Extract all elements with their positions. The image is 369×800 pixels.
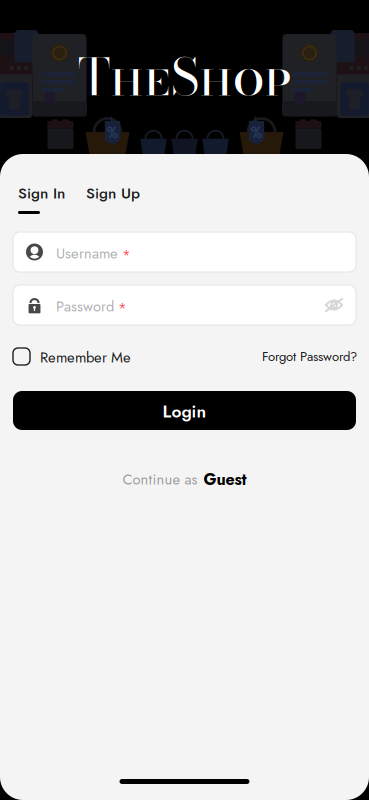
button[interactable]: Sign In [18, 182, 67, 214]
button[interactable]: Remember Me [13, 348, 131, 365]
staticText: Continue as [122, 469, 197, 490]
button[interactable]: Continue as [122, 471, 246, 488]
button[interactable]: Sign Up [86, 182, 142, 214]
button[interactable]: Forgot Password? [262, 349, 357, 364]
staticText: * [118, 297, 127, 319]
staticText: Sign In [18, 182, 65, 204]
button[interactable]: Username [13, 232, 356, 272]
staticText: Login [162, 399, 206, 424]
staticText: Password [56, 296, 114, 317]
staticText: Forgot Password? [262, 347, 357, 366]
button[interactable]: Login [13, 391, 356, 430]
staticText: Guest [203, 468, 246, 491]
staticText: Sign Up [86, 182, 140, 204]
staticText: Username [56, 243, 118, 264]
button[interactable]: Password [13, 285, 356, 325]
staticText: Remember Me [40, 347, 131, 368]
staticText: TheShop [78, 38, 291, 116]
staticText: * [122, 244, 131, 266]
